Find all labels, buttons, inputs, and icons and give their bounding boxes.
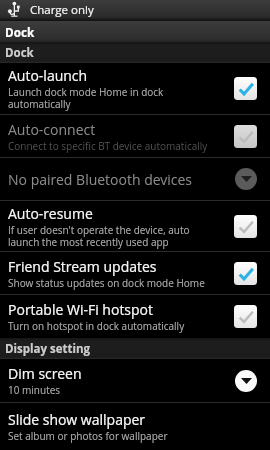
button[interactable]: Auto-connect	[0, 115, 270, 157]
staticText: 10 minutes	[8, 383, 61, 397]
button[interactable]: Portable Wi-Fi hotspot	[0, 295, 270, 338]
staticText: Turn on hotspot in dock automatically	[8, 319, 185, 333]
button[interactable]: No paired Bluetooth devices	[0, 158, 270, 200]
staticText: Launch dock mode Home in dock automatica…	[8, 85, 164, 111]
staticText: If user doesn't operate the device, auto…	[8, 223, 190, 249]
staticText: Auto-resume	[8, 204, 93, 223]
button[interactable]: Dim screen	[0, 359, 270, 402]
staticText: No paired Bluetooth devices	[8, 170, 193, 189]
button[interactable]: Toggle	[234, 262, 257, 285]
staticText: Dock	[5, 45, 34, 61]
button[interactable]: Auto-launch	[0, 63, 270, 114]
button[interactable]: Auto-resume	[0, 201, 270, 251]
staticText: Show status updates on dock mode Home	[8, 276, 205, 290]
staticText: Display setting	[5, 341, 91, 357]
button[interactable]: Expand	[235, 168, 257, 190]
staticText: Portable Wi-Fi hotspot	[8, 300, 153, 319]
button[interactable]: Toggle	[234, 305, 257, 328]
button[interactable]: Expand	[235, 370, 257, 392]
staticText: Auto-launch	[8, 66, 88, 85]
staticText: Auto-connect	[8, 120, 96, 139]
button[interactable]: Friend Stream updates	[0, 252, 270, 294]
button[interactable]: Toggle	[234, 215, 257, 238]
staticText: Dim screen	[8, 364, 82, 383]
button[interactable]: Toggle	[234, 77, 257, 100]
button[interactable]: Slide show wallpaper	[0, 403, 270, 450]
staticText: Dock	[5, 24, 35, 40]
staticText: Connect to specific BT device automatica…	[8, 139, 208, 153]
staticText: Charge only	[30, 2, 94, 18]
staticText: Slide show wallpaper	[8, 410, 146, 429]
button[interactable]: Toggle	[234, 125, 257, 148]
staticText: Friend Stream updates	[8, 257, 157, 276]
staticText: Set album or photos for wallpaper	[8, 429, 168, 443]
